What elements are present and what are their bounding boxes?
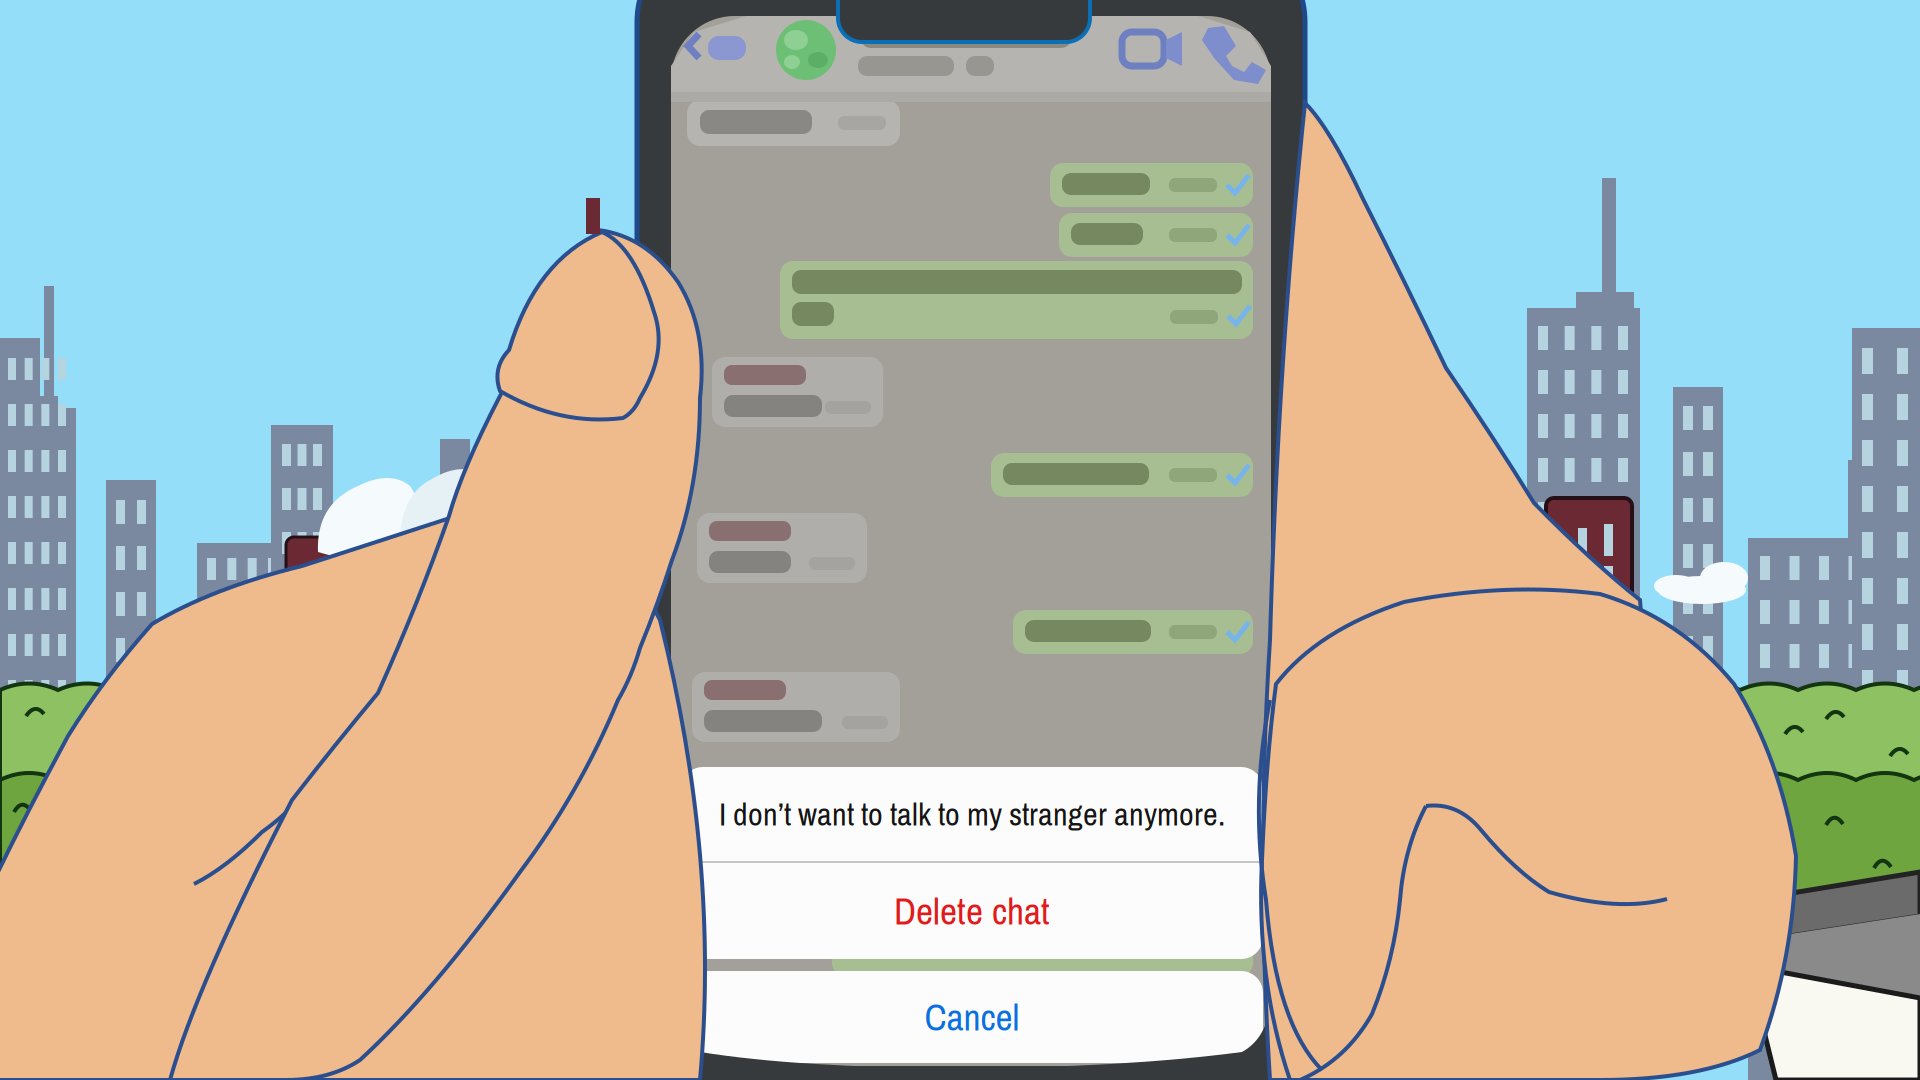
staticText: I don’t want to talk to my stranger anym… [719,792,1225,835]
button[interactable]: Delete chat [681,863,1263,959]
staticText: Cancel [924,992,1019,1042]
staticText: Delete chat [894,886,1050,936]
button[interactable]: Cancel [681,971,1263,1063]
